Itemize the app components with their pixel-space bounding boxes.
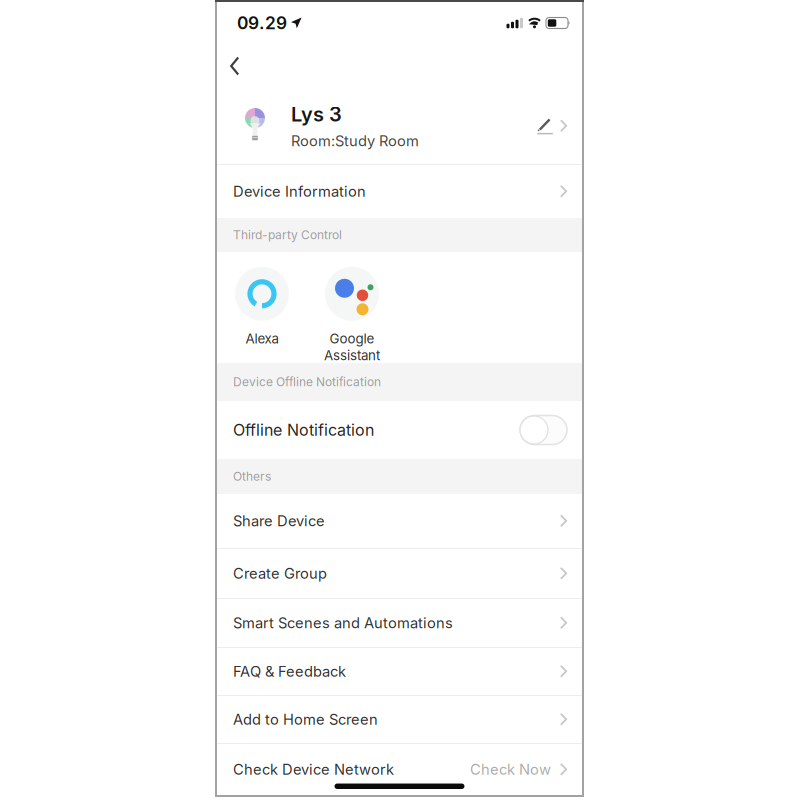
button[interactable]: FAQ & Feedback (217, 648, 582, 695)
staticText: 09.29 (237, 13, 287, 33)
staticText: FAQ & Feedback (233, 663, 346, 680)
staticText: Create Group (233, 565, 327, 582)
button[interactable]: Back (217, 44, 582, 88)
button[interactable]: Lys 3 (217, 88, 582, 164)
staticText: Offline Notification (233, 421, 374, 439)
button[interactable]: Share Device (217, 494, 582, 548)
button[interactable]: Google (324, 267, 380, 363)
staticText: Share Device (233, 512, 325, 530)
staticText: Lys 3 (291, 103, 342, 126)
button[interactable]: Offline Notification (217, 401, 582, 459)
staticText: Check Device Network (233, 761, 394, 778)
staticText: Add to Home Screen (233, 711, 378, 728)
staticText: Smart Scenes and Automations (233, 614, 453, 632)
button[interactable]: Smart Scenes and Automations (217, 599, 582, 647)
button[interactable]: Device Information (217, 165, 582, 218)
button[interactable]: Alexa (235, 267, 289, 346)
button[interactable]: Create Group (217, 549, 582, 598)
staticText: Assistant (324, 347, 380, 363)
staticText: Google (329, 331, 374, 346)
button[interactable]: Check Device Network (217, 744, 582, 795)
staticText: Check Now (470, 761, 551, 778)
staticText: Room:Study Room (291, 132, 419, 149)
staticText: Others (233, 469, 271, 484)
button[interactable]: Add to Home Screen (217, 696, 582, 743)
staticText: Device Information (233, 183, 366, 200)
staticText: Third-party Control (233, 228, 342, 242)
staticText: Alexa (245, 331, 278, 346)
staticText: Device Offline Notification (233, 375, 381, 389)
